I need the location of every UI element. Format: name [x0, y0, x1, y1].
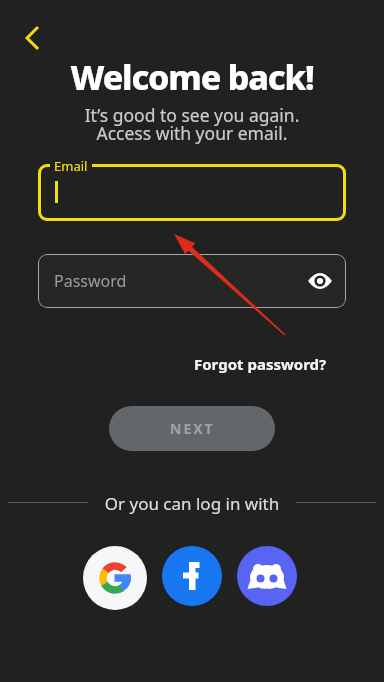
button[interactable]: [83, 546, 147, 610]
button[interactable]: Forgot password?: [194, 354, 327, 374]
staticText: Email: [54, 157, 88, 175]
staticText: Welcome back!: [0, 54, 384, 100]
button[interactable]: Password: [38, 254, 346, 308]
staticText: Or you can log in with: [0, 492, 384, 515]
button[interactable]: [300, 261, 340, 301]
button[interactable]: [162, 546, 222, 606]
button[interactable]: [237, 546, 297, 606]
button[interactable]: [38, 164, 346, 221]
staticText: It’s good to see you again. Access with …: [0, 103, 384, 145]
button[interactable]: [10, 16, 53, 59]
staticText: NEXT: [170, 419, 215, 438]
button[interactable]: NEXT: [109, 406, 275, 451]
staticText: Password: [54, 270, 127, 292]
staticText: Forgot password?: [194, 354, 327, 374]
